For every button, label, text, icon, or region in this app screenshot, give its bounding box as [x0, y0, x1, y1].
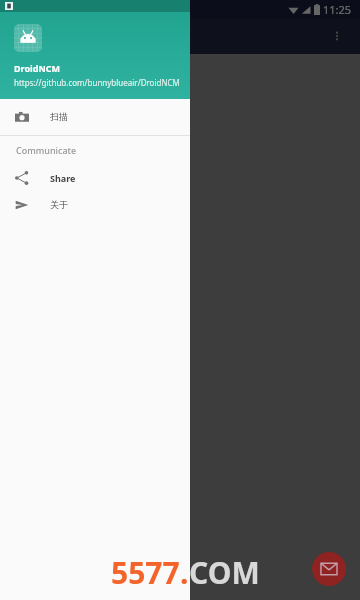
- staticText: 扫描: [50, 111, 68, 122]
- other: App icon: [14, 24, 42, 52]
- button[interactable]: More options: [322, 21, 352, 51]
- staticText: DroidNCM: [14, 62, 61, 74]
- staticText: Communicate: [16, 144, 77, 156]
- staticText: https://github.com/bunnyblueair/DroidNCM: [14, 77, 180, 88]
- staticText: Share: [50, 172, 76, 184]
- button[interactable]: Share: [0, 164, 190, 191]
- button[interactable]: [190, 0, 360, 600]
- button[interactable]: 扫描: [0, 103, 190, 130]
- staticText: COM: [189, 552, 260, 593]
- staticText: 5577: [111, 552, 180, 593]
- button[interactable]: 关于: [0, 191, 190, 218]
- staticText: 11:25: [323, 2, 352, 17]
- button[interactable]: Compose mail: [312, 552, 346, 586]
- staticText: .: [180, 552, 189, 593]
- staticText: 关于: [50, 199, 68, 210]
